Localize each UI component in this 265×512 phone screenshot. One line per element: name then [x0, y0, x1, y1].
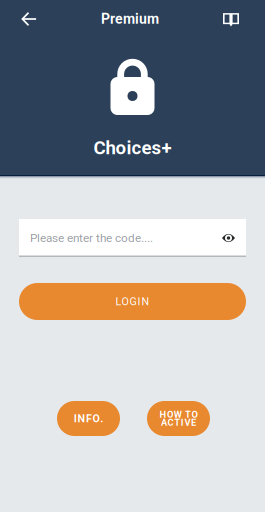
staticText: Please enter the code.... — [30, 231, 153, 245]
button[interactable]: Guide — [213, 1, 249, 37]
staticText: INFO. — [74, 412, 103, 425]
button[interactable]: LOGIN — [19, 283, 246, 320]
button[interactable]: Back — [11, 1, 47, 37]
button[interactable]: Please enter the code.... — [19, 219, 246, 257]
button[interactable]: INFO. — [57, 401, 120, 436]
staticText: Choices+ — [93, 137, 171, 159]
button[interactable]: HOW TO — [147, 401, 210, 436]
staticText: ACTIVE — [161, 417, 196, 428]
staticText: HOW TO — [159, 409, 197, 420]
staticText: Premium — [101, 11, 159, 27]
staticText: LOGIN — [115, 295, 149, 308]
